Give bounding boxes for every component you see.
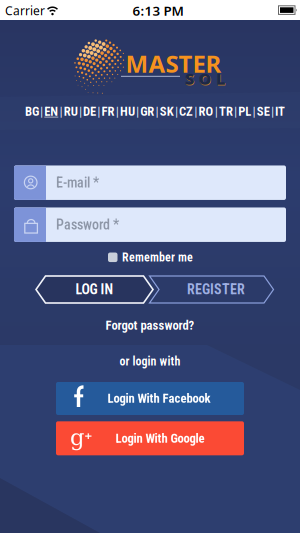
staticText: RO [198,104,213,119]
button[interactable]: BG [25,104,39,119]
staticText: + [84,426,92,444]
staticText: MASTER [125,48,221,79]
button[interactable]: E-mail * [14,165,286,200]
staticText: GR [140,104,154,119]
button[interactable]: RO [198,104,213,119]
staticText: FR [101,104,114,119]
staticText: DE [83,104,96,119]
staticText: g [70,424,85,450]
button[interactable]: PL [238,104,251,119]
button[interactable]: HU [120,104,135,119]
staticText: L [217,69,226,90]
staticText: O [199,69,212,90]
staticText: SK [160,104,174,119]
button[interactable]: SK [160,104,174,119]
button[interactable]: REGISTER [146,274,276,305]
staticText: | [175,104,178,119]
button[interactable]: TR [219,104,233,119]
button[interactable]: IT [275,104,285,119]
staticText: E-mail * [56,174,99,191]
button[interactable]: Password * [14,207,286,242]
button[interactable]: Login With Facebook [56,382,244,415]
staticText: Carrier [5,2,45,18]
button[interactable]: g [56,421,244,455]
button[interactable]: Forgot password? [105,318,194,333]
staticText: Remember me [122,250,193,264]
staticText: PL [238,104,251,119]
button[interactable]: EN [44,104,58,119]
button[interactable]: FR [101,104,114,119]
staticText: | [40,104,43,119]
button[interactable]: CZ [179,104,193,119]
staticText: | [116,104,119,119]
staticText: BG [25,104,39,119]
staticText: | [97,104,100,119]
staticText: or login with [119,354,180,369]
staticText: S [185,68,194,89]
staticText: | [194,104,197,119]
staticText: L [216,68,225,89]
button[interactable]: GR [140,104,154,119]
staticText: | [234,104,237,119]
button[interactable]: DE [83,104,96,119]
staticText: 6:13 PM [132,2,183,19]
staticText: | [155,104,158,119]
staticText: CZ [179,104,193,119]
staticText: REGISTER [187,281,245,298]
staticText: SE [257,104,270,119]
staticText: EN [44,104,58,119]
staticText: IT [275,104,285,119]
staticText: HU [120,104,135,119]
staticText: O [198,68,211,89]
staticText: S [186,69,195,90]
staticText: | [271,104,274,119]
staticText: | [215,104,218,119]
button[interactable]: SE [257,104,270,119]
staticText: | [79,104,82,119]
staticText: RU [64,104,78,119]
button[interactable]: LOG IN [34,274,155,305]
staticText: | [136,104,139,119]
staticText: LOG IN [75,281,113,298]
button[interactable]: Remember me [108,250,193,264]
button[interactable]: RU [64,104,78,119]
staticText: | [252,104,255,119]
staticText: Login With Google [115,431,204,446]
staticText: | [59,104,62,119]
staticText: Forgot password? [105,318,194,333]
staticText: Password * [56,216,119,233]
staticText: Login With Facebook [107,391,210,406]
staticText: TR [219,104,233,119]
